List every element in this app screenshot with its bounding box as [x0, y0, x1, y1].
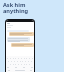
- staticText: Ask him anything: [3, 1, 29, 15]
